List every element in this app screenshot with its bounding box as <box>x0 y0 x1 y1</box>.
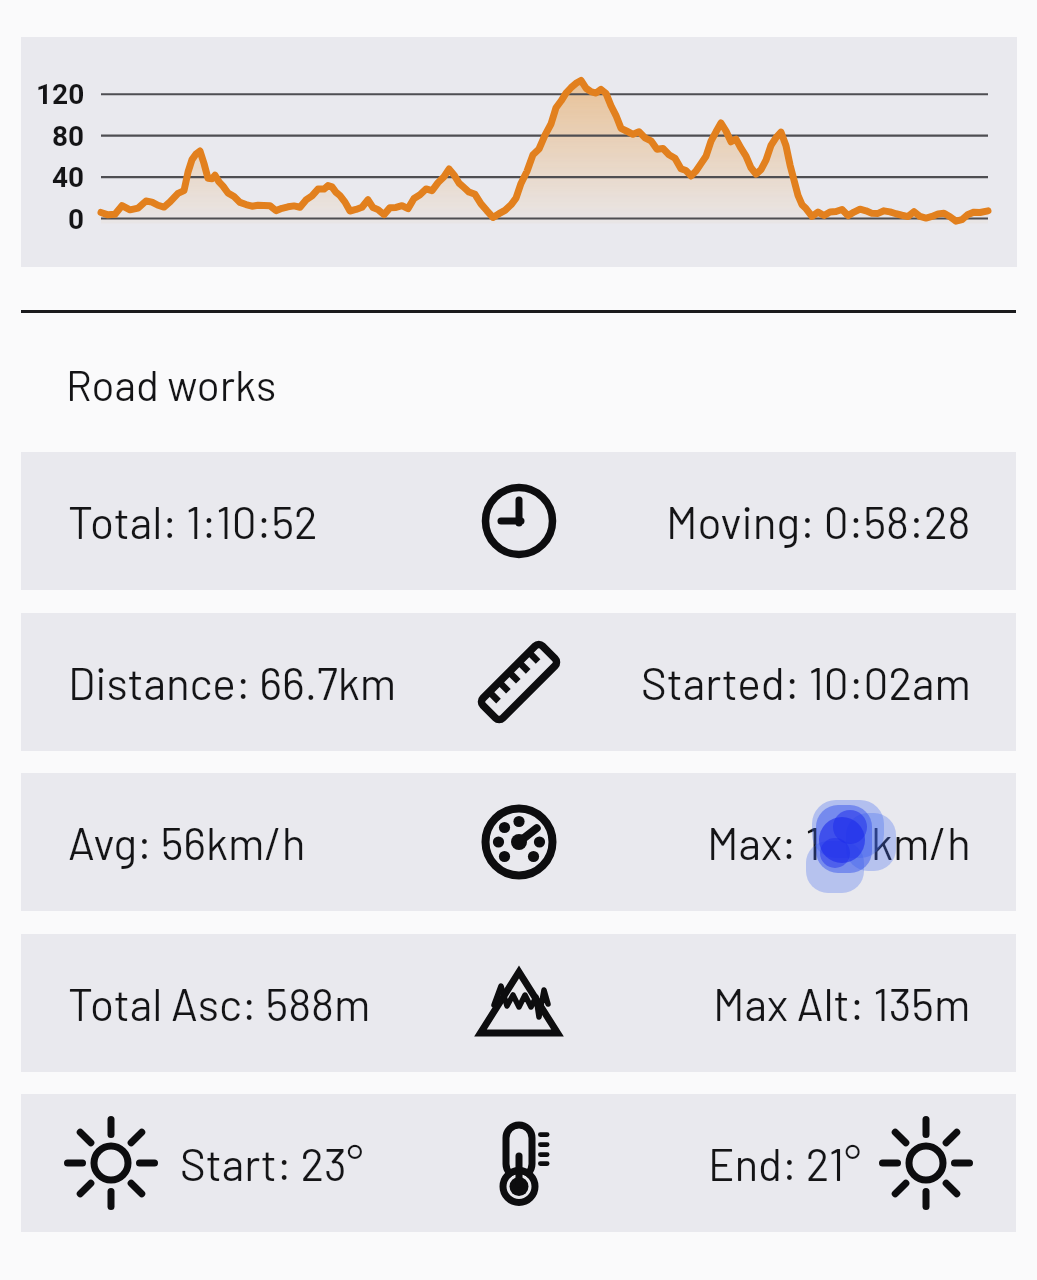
staticText: 40 <box>52 161 85 194</box>
button[interactable]: Total: 1:10:52 <box>21 452 1016 590</box>
staticText: Avg: 56km/h <box>68 816 306 869</box>
staticText: 120 <box>36 78 85 111</box>
staticText: km/h <box>871 816 971 869</box>
staticText: Max: 1 <box>707 816 821 869</box>
staticText: Total: 1:10:52 <box>68 495 318 548</box>
staticText: Moving: 0:58:28 <box>666 495 971 548</box>
staticText: End: 21° <box>708 1137 861 1190</box>
staticText: Road works <box>66 359 277 409</box>
staticText: Total Asc: 588m <box>68 977 371 1030</box>
staticText: Max Alt: 135m <box>713 977 971 1030</box>
staticText: Start: 23° <box>180 1137 364 1190</box>
button[interactable]: Total Asc: 588m <box>21 934 1016 1072</box>
button[interactable]: Start: 23° <box>21 1094 1016 1232</box>
button[interactable]: Avg: 56km/h <box>21 773 1016 911</box>
button[interactable]: Distance: 66.7km <box>21 613 1016 751</box>
staticText: 80 <box>52 120 85 153</box>
staticText: 0 <box>68 203 85 236</box>
staticText: Started: 10:02am <box>641 656 971 709</box>
staticText: Distance: 66.7km <box>68 656 397 709</box>
